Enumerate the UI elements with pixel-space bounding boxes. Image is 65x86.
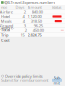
button[interactable]: Total Trip Cost xyxy=(0,33,65,37)
staticText: 2 xyxy=(25,28,27,33)
staticText: Amount xyxy=(27,5,41,10)
staticText: Expense Type xyxy=(1,0,10,15)
button[interactable]: Conference xyxy=(0,28,65,33)
staticText: 2 xyxy=(24,9,26,14)
staticText: 318.50 xyxy=(31,18,42,24)
button[interactable]: Meals xyxy=(0,19,65,23)
staticText: 4 xyxy=(22,14,24,19)
staticText: 96.25 xyxy=(34,23,43,28)
staticText: 3 xyxy=(24,23,26,28)
staticText: 2,824.75 xyxy=(27,32,41,37)
staticText: Override policy limits xyxy=(5,73,43,79)
staticText: Submit xyxy=(53,75,60,86)
staticText: 1,120.00 xyxy=(27,14,41,19)
button[interactable]: Hotel xyxy=(0,14,65,19)
staticText: Conference xyxy=(0,25,14,36)
staticText: 4 xyxy=(23,18,25,24)
staticText: Airfare xyxy=(0,9,13,14)
staticText: Total Trip Cost xyxy=(1,27,10,43)
button[interactable]: Ground xyxy=(0,23,65,28)
staticText: Meals xyxy=(1,18,12,24)
staticText: Ground xyxy=(0,23,13,28)
staticText: 450.00 xyxy=(33,28,44,33)
staticText: 15 xyxy=(20,32,24,37)
button[interactable]: Submit xyxy=(52,79,62,82)
staticText: Hotel xyxy=(1,14,10,19)
staticText: Submit for reimbursement xyxy=(1,78,48,83)
staticText: Days xyxy=(15,5,24,10)
button[interactable]: Airfare xyxy=(0,10,65,14)
staticText: Q3-Travel-Expenses.numbers xyxy=(4,0,55,5)
staticText: Status xyxy=(51,5,61,10)
button[interactable]: Override policy limits xyxy=(0,74,65,78)
staticText: 840.00 xyxy=(32,9,43,14)
